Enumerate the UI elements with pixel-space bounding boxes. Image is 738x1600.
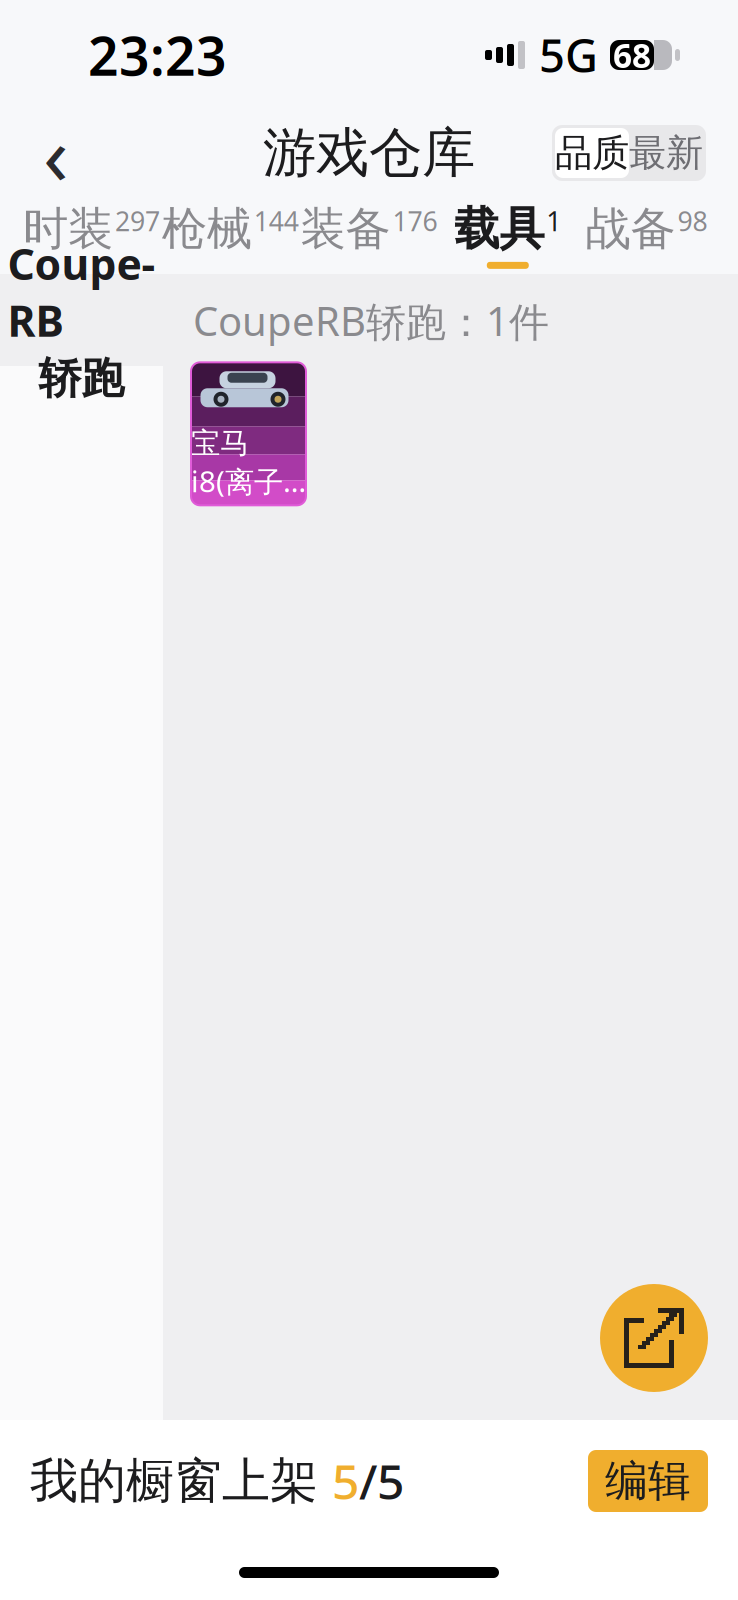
staticText: 我的橱窗上架 xyxy=(30,1451,332,1510)
staticText: 1 xyxy=(546,203,561,239)
button[interactable]: 最新 xyxy=(629,128,703,178)
staticText: 战备 xyxy=(586,201,676,257)
button[interactable]: Back xyxy=(16,113,96,193)
button[interactable]: 时装 xyxy=(22,196,161,274)
button[interactable]: 品质 xyxy=(555,128,629,178)
staticText: CoupeRB xyxy=(7,235,155,348)
button[interactable]: 编辑 xyxy=(588,1450,708,1512)
staticText: 枪械 xyxy=(162,201,252,257)
staticText: 装备 xyxy=(300,201,390,257)
button[interactable]: CoupeRB xyxy=(0,274,163,366)
staticText: 时装 xyxy=(23,201,113,257)
button[interactable]: Share xyxy=(590,1274,718,1402)
staticText: CoupeRB轿跑：1件 xyxy=(193,294,549,347)
staticText: 23:23 xyxy=(88,20,227,90)
staticText: 编辑 xyxy=(605,1455,691,1507)
staticText: 297 xyxy=(115,203,160,239)
button[interactable]: 宝马i8(离子… xyxy=(191,362,306,505)
button[interactable]: 枪械 xyxy=(161,196,300,274)
staticText: 98 xyxy=(678,203,708,239)
staticText: 最新 xyxy=(629,130,703,176)
staticText: /5 xyxy=(359,1449,404,1513)
staticText: 游戏仓库 xyxy=(263,120,475,186)
staticText: 5 xyxy=(332,1449,359,1513)
staticText: 68 xyxy=(613,33,651,77)
staticText: 144 xyxy=(254,203,299,239)
button[interactable]: 载具 xyxy=(438,196,577,274)
button[interactable]: 战备 xyxy=(577,196,716,274)
staticText: 载具 xyxy=(454,201,544,257)
staticText: 176 xyxy=(392,203,437,239)
staticText: ‹ xyxy=(43,98,69,208)
staticText: 5G xyxy=(539,25,598,85)
staticText: 轿跑 xyxy=(38,352,124,405)
staticText: 宝马i8(离子… xyxy=(191,425,306,500)
button[interactable]: 装备 xyxy=(300,196,438,274)
staticText: 品质 xyxy=(555,130,629,176)
